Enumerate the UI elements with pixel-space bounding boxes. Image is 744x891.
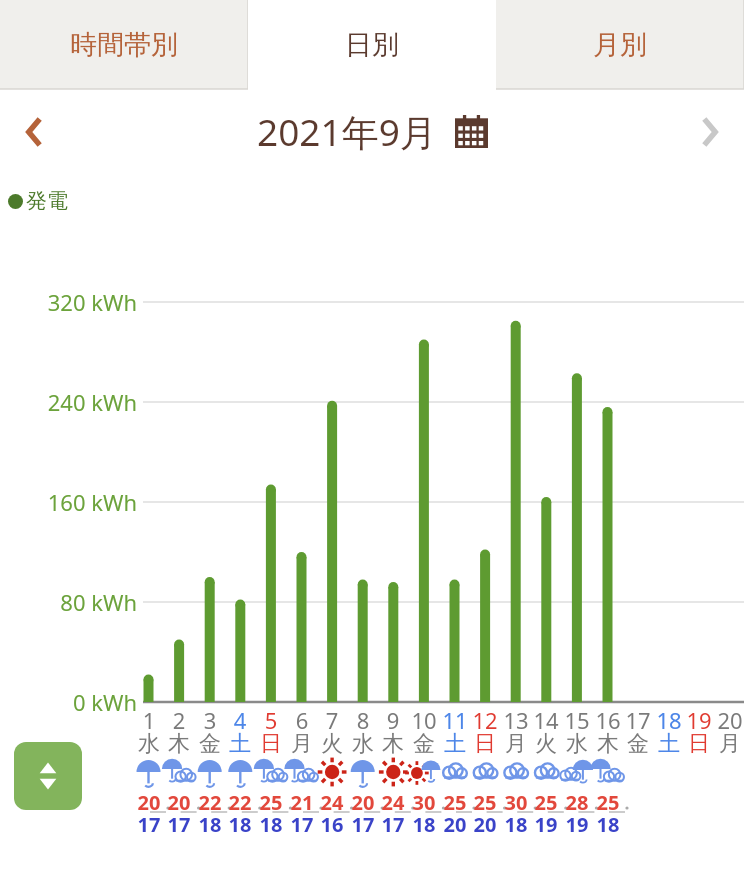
staticText: 火 [526, 730, 566, 758]
staticText: 18 [220, 811, 260, 838]
staticText: 17 [282, 811, 322, 838]
staticText: 17 [159, 811, 199, 838]
staticText: 13 [496, 705, 536, 735]
button[interactable]: 時間帯別 [0, 0, 248, 89]
button[interactable]: 日別 [248, 0, 496, 89]
staticText: 21 [282, 789, 322, 816]
staticText: 土 [435, 730, 475, 758]
button[interactable]: 2021年9月 [257, 106, 488, 157]
staticText: 5 [251, 705, 291, 735]
staticText: 30 [496, 789, 536, 816]
staticText: 22 [220, 789, 260, 816]
staticText: 25 [588, 789, 628, 816]
staticText: 17 [129, 811, 169, 838]
staticText: 18 [190, 811, 230, 838]
staticText: 80 kWh [0, 587, 137, 617]
staticText: 2 [159, 705, 199, 735]
staticText: 18 [251, 811, 291, 838]
staticText: 月 [710, 730, 744, 758]
staticText: 月 [496, 730, 536, 758]
staticText: 14 [526, 705, 566, 735]
staticText: 20 [159, 789, 199, 816]
staticText: 18 [649, 705, 689, 735]
staticText: 20 [129, 789, 169, 816]
staticText: 30 [404, 789, 444, 816]
staticText: 日別 [345, 28, 399, 62]
staticText: 月別 [593, 28, 647, 62]
staticText: 金 [404, 730, 444, 758]
staticText: 28 [557, 789, 597, 816]
button[interactable]: Next month [674, 89, 744, 174]
staticText: 19 [557, 811, 597, 838]
staticText: 0 kWh [0, 687, 137, 717]
staticText: 12 [465, 705, 505, 735]
staticText: 10 [404, 705, 444, 735]
staticText: 16 [588, 705, 628, 735]
staticText: 21 [741, 705, 744, 735]
staticText: 18 [404, 811, 444, 838]
staticText: 20 [435, 811, 475, 838]
staticText: 16 [312, 811, 352, 838]
staticText: 320 kWh [0, 287, 137, 317]
staticText: 6 [282, 705, 322, 735]
staticText: 25 [526, 789, 566, 816]
staticText: 木 [159, 730, 199, 758]
staticText: 240 kWh [0, 387, 137, 417]
staticText: 水 [129, 730, 169, 758]
staticText: 日 [465, 730, 505, 758]
staticText: 18 [588, 811, 628, 838]
staticText: 土 [220, 730, 260, 758]
staticText: 19 [679, 705, 719, 735]
staticText: 24 [312, 789, 352, 816]
staticText: 22 [190, 789, 230, 816]
staticText: 月 [282, 730, 322, 758]
staticText: 17 [343, 811, 383, 838]
button[interactable]: 月別 [496, 0, 744, 89]
staticText: 水 [557, 730, 597, 758]
staticText: 木 [373, 730, 413, 758]
staticText: 日 [679, 730, 719, 758]
staticText: 4 [220, 705, 260, 735]
staticText: 18 [496, 811, 536, 838]
staticText: 17 [373, 811, 413, 838]
staticText: 8 [343, 705, 383, 735]
staticText: 土 [649, 730, 689, 758]
staticText: 木 [588, 730, 628, 758]
staticText: 19 [526, 811, 566, 838]
button[interactable]: Change scale [14, 742, 82, 810]
staticText: 11 [435, 705, 475, 735]
staticText: 発電 [26, 188, 68, 214]
staticText: 25 [251, 789, 291, 816]
staticText: 20 [343, 789, 383, 816]
staticText: 17 [618, 705, 658, 735]
staticText: 1 [129, 705, 169, 735]
staticText: 水 [343, 730, 383, 758]
staticText: 時間帯別 [70, 28, 178, 62]
staticText: 9 [373, 705, 413, 735]
staticText: 2021年9月 [257, 106, 437, 157]
staticText: 20 [465, 811, 505, 838]
staticText: 7 [312, 705, 352, 735]
staticText: 160 kWh [0, 487, 137, 517]
staticText: 金 [618, 730, 658, 758]
staticText: 25 [465, 789, 505, 816]
staticText: 3 [190, 705, 230, 735]
button[interactable]: Previous month [0, 89, 70, 174]
staticText: 25 [435, 789, 475, 816]
staticText: 火 [312, 730, 352, 758]
staticText: 金 [190, 730, 230, 758]
staticText: 24 [373, 789, 413, 816]
staticText: 日 [251, 730, 291, 758]
staticText: 15 [557, 705, 597, 735]
staticText: 20 [710, 705, 744, 735]
